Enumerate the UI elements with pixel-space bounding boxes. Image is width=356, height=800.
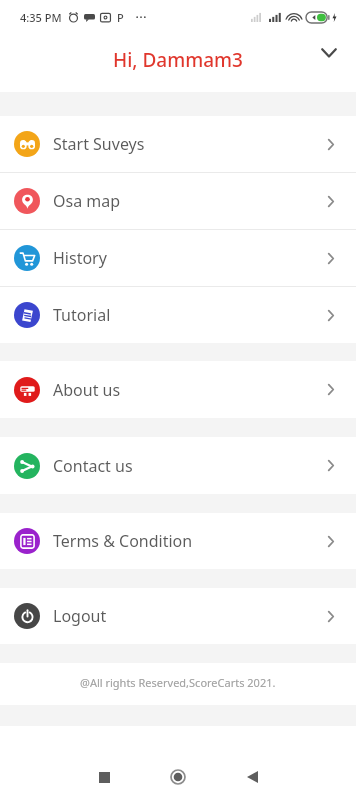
staticText: 4:35 PM <box>20 10 62 25</box>
staticText: Osa map <box>53 190 121 212</box>
staticText: Tutorial <box>53 304 111 326</box>
button[interactable]: Home <box>141 760 215 794</box>
staticText: About us <box>53 379 121 401</box>
button[interactable]: Back <box>215 760 289 794</box>
staticText: Terms & Condition <box>53 530 193 552</box>
staticText: Contact us <box>53 455 133 477</box>
button[interactable]: Recents <box>67 760 141 794</box>
button[interactable]: Terms & Condition <box>0 513 356 569</box>
button[interactable]: Expand <box>317 41 341 65</box>
staticText: P <box>117 10 124 25</box>
staticText: @All rights Reserved,ScoreCarts 2021. <box>80 675 276 690</box>
button[interactable]: Tutorial <box>0 287 356 343</box>
button[interactable]: History <box>0 230 356 286</box>
button[interactable]: About us <box>0 361 356 418</box>
staticText: Start Suveys <box>53 133 145 155</box>
button[interactable]: Osa map <box>0 173 356 229</box>
button[interactable]: Contact us <box>0 437 356 494</box>
staticText: Hi, Dammam3 <box>113 47 243 73</box>
staticText: History <box>53 247 107 269</box>
staticText: Logout <box>53 605 107 627</box>
button[interactable]: Logout <box>0 588 356 644</box>
button[interactable]: Start Suveys <box>0 116 356 172</box>
